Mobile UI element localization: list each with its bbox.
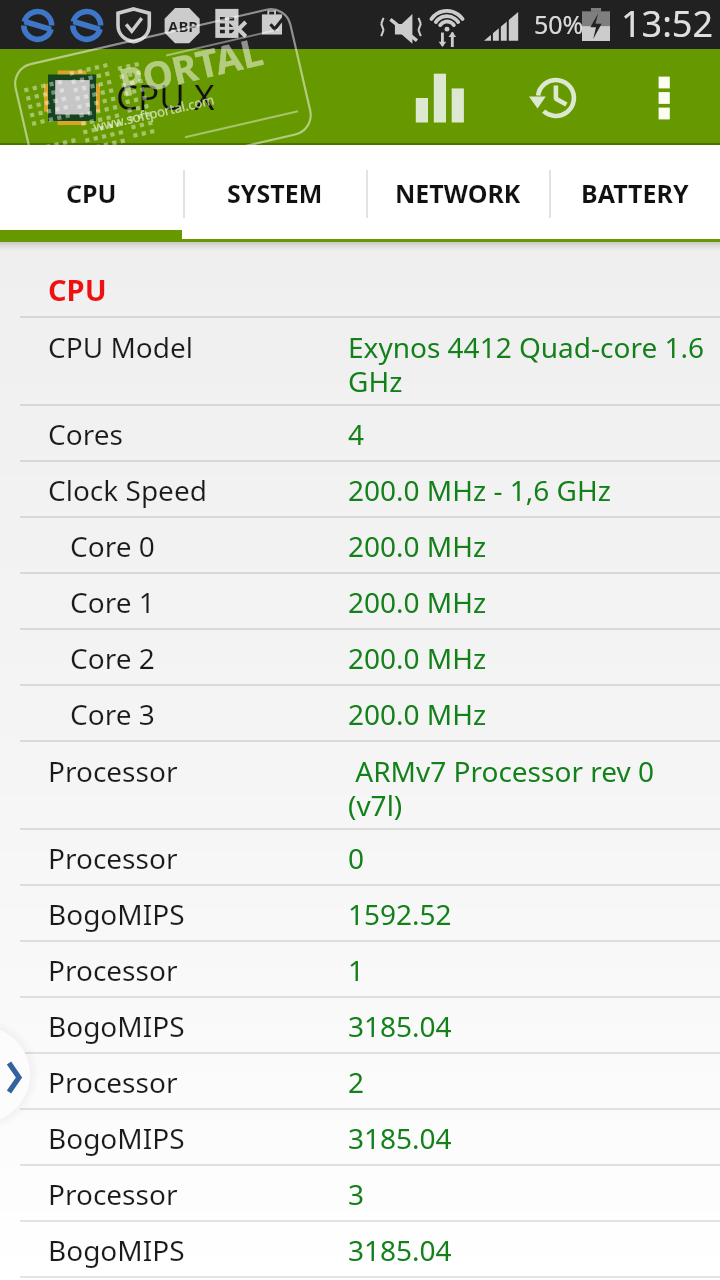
button[interactable]: Core 3 <box>0 686 720 740</box>
staticText: 200.0 MHz <box>348 639 708 677</box>
staticText: Core 1 <box>70 583 155 621</box>
button[interactable]: SYSTEM <box>183 145 366 242</box>
staticText: Processor <box>48 752 178 790</box>
button[interactable]: BogoMIPS <box>0 1222 720 1276</box>
button[interactable]: Processor <box>0 830 720 884</box>
staticText: 1592.52 <box>348 895 708 933</box>
staticText: Processor <box>48 1175 178 1213</box>
staticText: Processor <box>48 839 178 877</box>
staticText: 3185.04 <box>348 1119 708 1157</box>
staticText: 0 <box>348 839 708 877</box>
staticText: 3185.04 <box>348 1007 708 1045</box>
button[interactable]: CPU Model <box>0 318 720 404</box>
staticText: Processor <box>48 1063 178 1101</box>
button[interactable]: Core 0 <box>0 518 720 572</box>
staticText: 2 <box>348 1063 708 1101</box>
button[interactable]: Clock Speed <box>0 462 720 516</box>
staticText: Core 0 <box>70 527 155 565</box>
button[interactable]: BogoMIPS <box>0 886 720 940</box>
staticText: NETWORK <box>395 176 521 210</box>
button[interactable]: Processor <box>0 742 720 828</box>
button[interactable]: Core 2 <box>0 630 720 684</box>
staticText: BogoMIPS <box>48 1231 185 1269</box>
staticText: PORTAL <box>114 24 268 108</box>
staticText: Exynos 4412 Quad-core 1.6 GHz <box>348 328 708 400</box>
staticText: BATTERY <box>581 176 689 210</box>
staticText: BogoMIPS <box>48 895 185 933</box>
staticText: CPU <box>66 176 117 210</box>
staticText: 4 <box>348 415 708 453</box>
button[interactable]: BATTERY <box>549 145 720 242</box>
staticText: Cores <box>48 415 123 453</box>
staticText: Processor <box>48 951 178 989</box>
button[interactable]: Core 1 <box>0 574 720 628</box>
button[interactable]: Charts <box>396 57 476 137</box>
staticText: BogoMIPS <box>48 1007 185 1045</box>
staticText: 200.0 MHz <box>348 583 708 621</box>
staticText: Clock Speed <box>48 471 207 509</box>
button[interactable]: CPU <box>0 145 183 242</box>
button[interactable]: Processor <box>0 942 720 996</box>
button[interactable]: Processor <box>0 1054 720 1108</box>
button[interactable]: More options <box>634 57 694 117</box>
staticText: CPU <box>48 270 107 309</box>
staticText: 200.0 MHz <box>348 695 708 733</box>
staticText: ABP <box>168 16 198 36</box>
staticText: Core 3 <box>70 695 155 733</box>
staticText: Core 2 <box>70 639 155 677</box>
staticText: www.softportal.com <box>92 90 216 136</box>
button[interactable]: Open navigation drawer <box>0 1026 30 1123</box>
staticText: SYSTEM <box>227 176 323 210</box>
staticText: 1 <box>348 951 708 989</box>
staticText: 50% <box>534 7 584 41</box>
button[interactable]: NETWORK <box>366 145 549 242</box>
staticText: CPU Model <box>48 328 193 366</box>
button[interactable]: History <box>515 57 595 137</box>
staticText: 3 <box>348 1175 708 1213</box>
staticText: BogoMIPS <box>48 1119 185 1157</box>
button[interactable]: Cores <box>0 406 720 460</box>
staticText: ARMv7 Processor rev 0 (v7l) <box>348 752 708 824</box>
button[interactable]: BogoMIPS <box>0 1110 720 1164</box>
button[interactable]: Processor <box>0 1166 720 1220</box>
staticText: 3185.04 <box>348 1231 708 1269</box>
staticText: CPU X <box>116 73 215 121</box>
staticText: 200.0 MHz - 1,6 GHz <box>348 471 708 509</box>
staticText: 200.0 MHz <box>348 527 708 565</box>
staticText: 13:52 <box>621 0 714 48</box>
button[interactable]: BogoMIPS <box>0 998 720 1052</box>
